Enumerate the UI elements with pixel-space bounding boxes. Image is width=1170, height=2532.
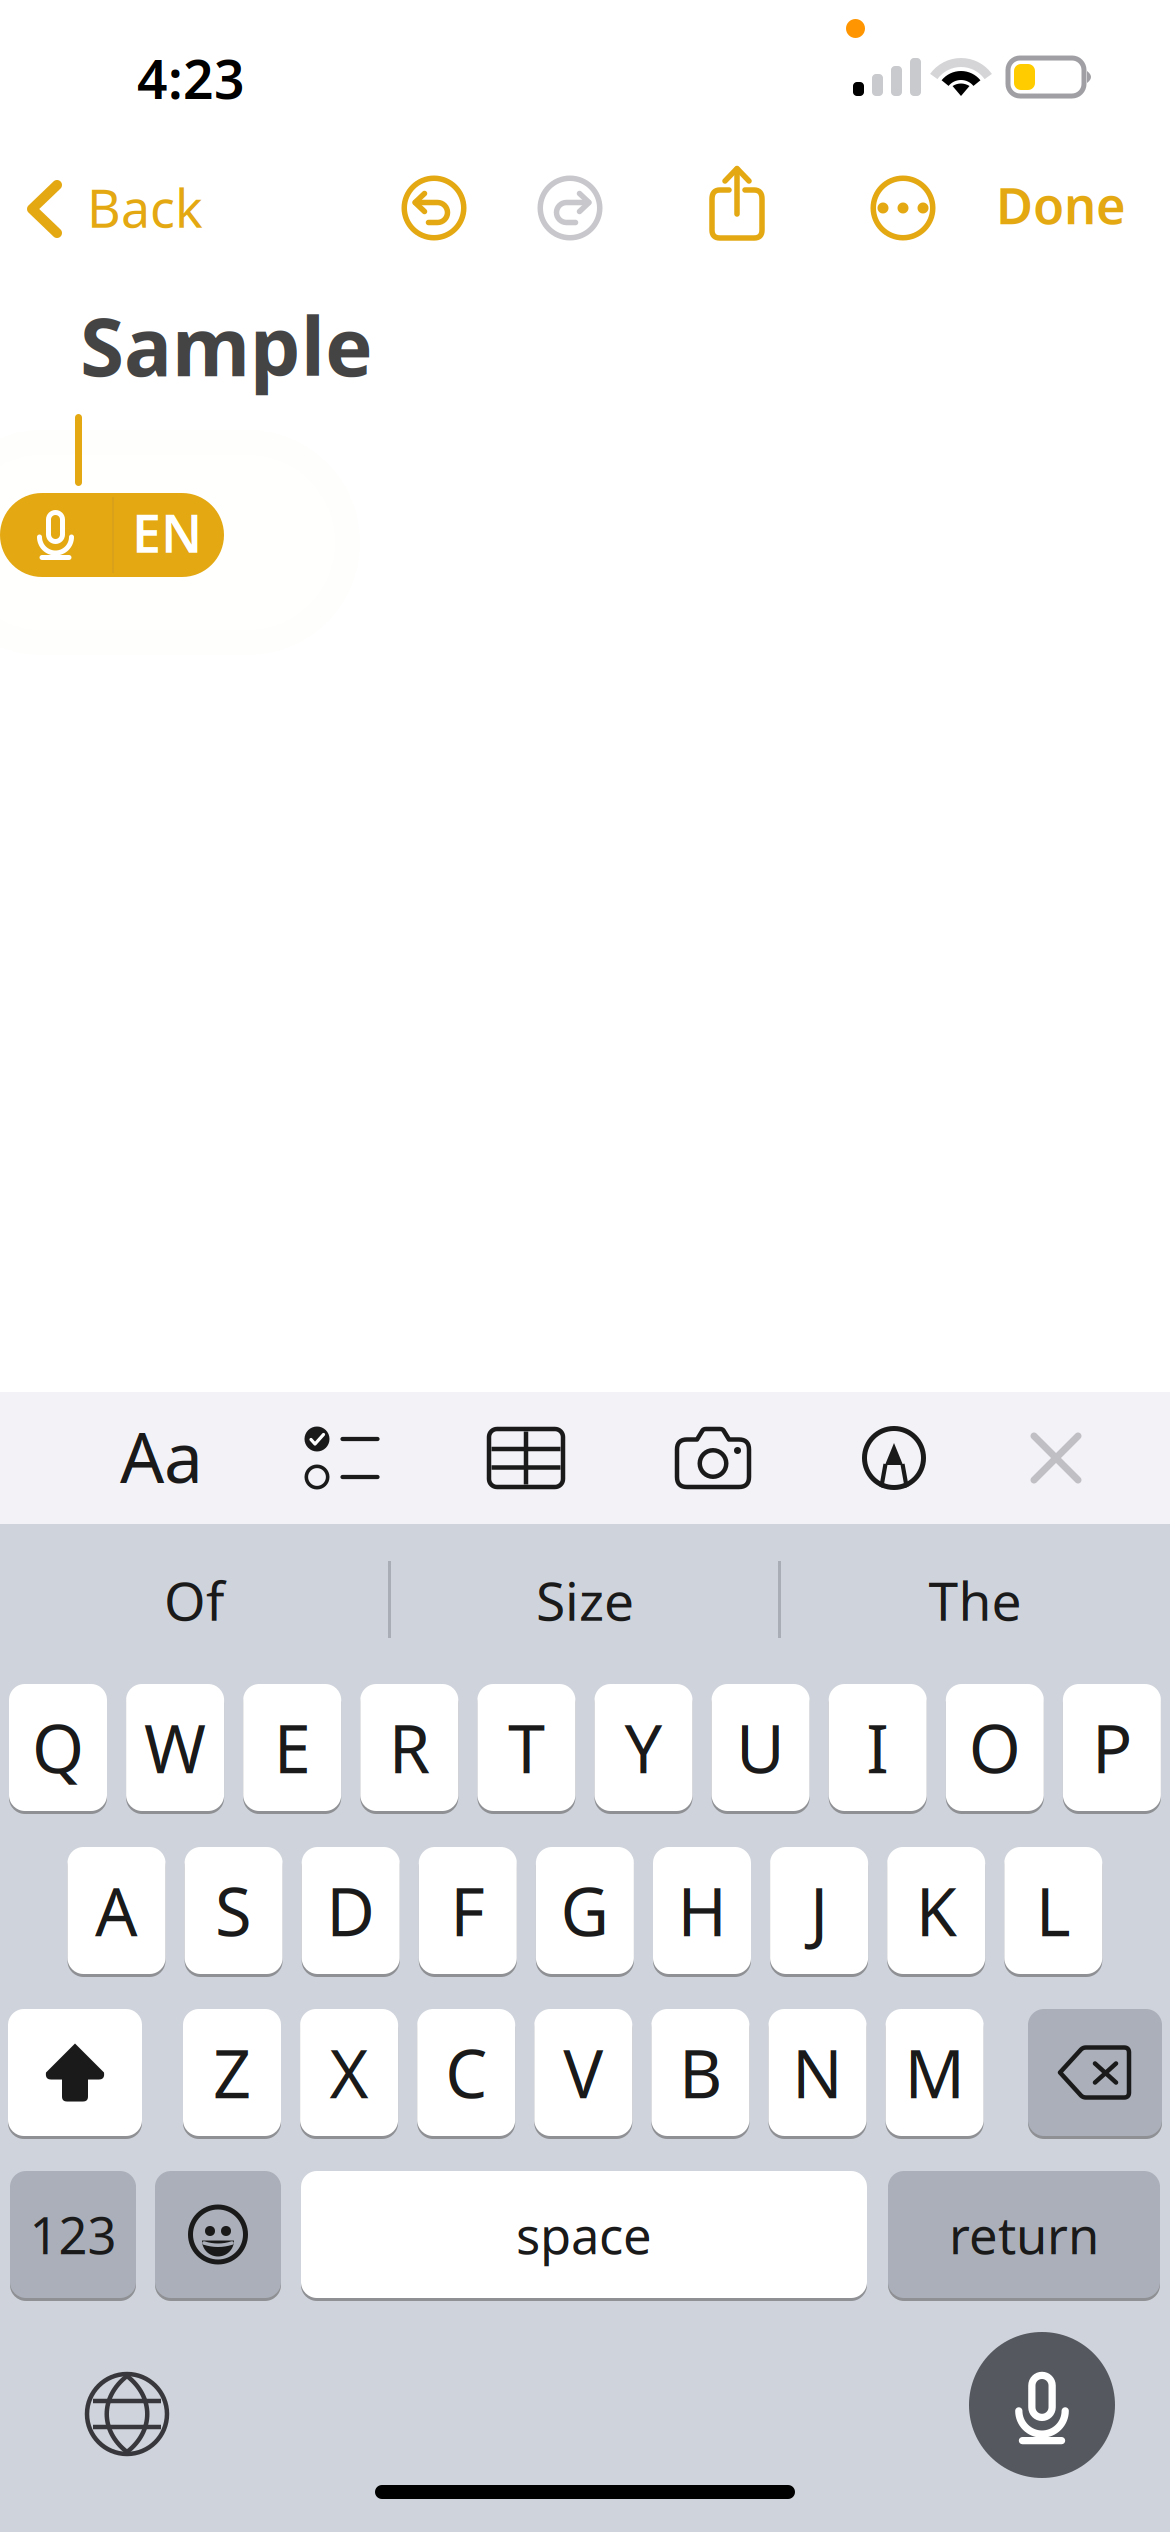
button[interactable]: E <box>243 1682 341 1813</box>
button[interactable]: Back <box>0 130 235 230</box>
button[interactable]: Text format <box>110 1392 270 1524</box>
button[interactable]: The <box>781 1524 1169 1676</box>
button[interactable]: R <box>360 1682 458 1813</box>
staticText: O <box>969 1703 1021 1792</box>
staticText: L <box>1036 1866 1071 1955</box>
button[interactable]: S <box>185 1845 283 1976</box>
button[interactable]: Emoji <box>155 2169 281 2300</box>
staticText: P <box>1092 1703 1132 1792</box>
staticText: space <box>516 2201 652 2268</box>
staticText: X <box>330 2028 369 2117</box>
button[interactable]: U <box>712 1682 810 1813</box>
staticText: B <box>679 2028 722 2117</box>
button[interactable]: Hide keyboard <box>981 1392 1131 1524</box>
button[interactable]: W <box>126 1682 224 1813</box>
button[interactable]: return <box>888 2169 1160 2300</box>
staticText: F <box>450 1866 485 1955</box>
button[interactable]: N <box>768 2007 866 2138</box>
button[interactable]: Markup <box>819 1392 969 1524</box>
button[interactable]: K <box>887 1845 985 1976</box>
staticText: C <box>445 2028 487 2117</box>
staticText: Back <box>87 173 203 242</box>
button[interactable]: D <box>302 1845 400 1976</box>
button[interactable]: M <box>886 2007 984 2138</box>
button[interactable]: V <box>534 2007 632 2138</box>
button[interactable]: Y <box>594 1682 692 1813</box>
button[interactable]: L <box>1004 1845 1102 1976</box>
staticText: N <box>792 2028 843 2117</box>
button[interactable]: B <box>651 2007 749 2138</box>
staticText: Q <box>32 1703 84 1792</box>
staticText: The <box>928 1565 1021 1635</box>
button[interactable]: P <box>1063 1682 1161 1813</box>
button[interactable]: Z <box>183 2007 281 2138</box>
staticText: M <box>905 2028 965 2117</box>
staticText: 123 <box>29 2201 116 2268</box>
staticText: J <box>810 1866 828 1955</box>
button[interactable]: Share <box>682 154 792 254</box>
staticText: Of <box>164 1565 224 1635</box>
button[interactable]: C <box>417 2007 515 2138</box>
staticText: Aa <box>120 1410 203 1502</box>
staticText: K <box>916 1866 957 1955</box>
button[interactable]: Next keyboard <box>67 2359 187 2469</box>
button[interactable]: X <box>300 2007 398 2138</box>
button[interactable]: G <box>536 1845 634 1976</box>
button[interactable]: Done <box>996 157 1166 257</box>
button[interactable]: Camera <box>638 1392 788 1524</box>
button[interactable]: Size <box>391 1524 779 1676</box>
button[interactable]: Q <box>9 1682 107 1813</box>
button[interactable]: T <box>477 1682 575 1813</box>
staticText: A <box>95 1866 138 1955</box>
staticText: Sample <box>80 292 373 398</box>
button[interactable]: More <box>848 158 958 258</box>
staticText: Y <box>624 1703 662 1792</box>
button[interactable]: Table <box>451 1392 601 1524</box>
staticText: return <box>949 2201 1099 2268</box>
staticText: I <box>866 1703 889 1792</box>
staticText: W <box>144 1703 206 1792</box>
button[interactable]: A <box>67 1845 165 1976</box>
button[interactable]: F <box>419 1845 517 1976</box>
staticText: Size <box>536 1565 634 1635</box>
staticText: U <box>736 1703 785 1792</box>
button[interactable]: H <box>653 1845 751 1976</box>
staticText: S <box>215 1866 252 1955</box>
button[interactable]: Undo <box>379 158 489 258</box>
staticText: H <box>677 1866 726 1955</box>
staticText: Z <box>213 2028 251 2117</box>
staticText: G <box>560 1866 609 1955</box>
button[interactable]: 123 <box>10 2169 136 2300</box>
button[interactable]: space <box>301 2169 867 2300</box>
staticText: T <box>508 1703 545 1792</box>
button[interactable]: O <box>946 1682 1044 1813</box>
staticText: E <box>274 1703 311 1792</box>
button[interactable]: Of <box>0 1524 388 1676</box>
button[interactable]: Dictate <box>969 2332 1115 2478</box>
button[interactable]: J <box>770 1845 868 1976</box>
button[interactable]: Dictation language English <box>0 493 224 577</box>
staticText: V <box>563 2028 603 2117</box>
staticText: 4:23 <box>137 43 245 114</box>
button[interactable]: Shift <box>8 2007 142 2138</box>
button[interactable]: Delete <box>1028 2007 1162 2138</box>
button[interactable]: I <box>829 1682 927 1813</box>
staticText: R <box>389 1703 430 1792</box>
staticText: D <box>326 1866 375 1955</box>
button[interactable]: Checklist <box>266 1392 416 1524</box>
staticText: EN <box>132 498 202 567</box>
button[interactable]: Redo <box>515 158 625 258</box>
staticText: Done <box>996 171 1126 238</box>
